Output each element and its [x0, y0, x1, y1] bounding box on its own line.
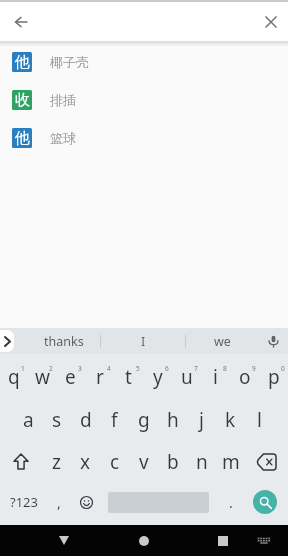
- staticText: 他: [15, 53, 30, 72]
- staticText: ?123: [10, 493, 38, 511]
- button[interactable]: z: [42, 440, 71, 483]
- staticText: 1: [21, 364, 25, 373]
- staticText: 7: [194, 364, 198, 373]
- staticText: k: [225, 407, 236, 433]
- staticText: 椰子壳: [50, 54, 89, 70]
- staticText: t: [125, 364, 132, 390]
- staticText: p: [268, 364, 280, 390]
- staticText: f: [111, 407, 118, 433]
- staticText: .: [229, 493, 233, 512]
- button[interactable]: Recents: [198, 525, 248, 556]
- staticText: 2: [49, 364, 53, 373]
- staticText: h: [167, 407, 179, 433]
- button[interactable]: v: [129, 440, 158, 483]
- staticText: m: [222, 449, 240, 475]
- button[interactable]: 他: [0, 119, 288, 157]
- button[interactable]: I: [103, 328, 183, 354]
- button[interactable]: c: [100, 440, 129, 483]
- button[interactable]: 5: [114, 354, 143, 397]
- staticText: 8: [223, 364, 227, 373]
- staticText: 篮球: [50, 130, 76, 146]
- staticText: I: [141, 333, 146, 350]
- button[interactable]: Back: [0, 2, 41, 41]
- button[interactable]: Backspace: [245, 440, 288, 483]
- button[interactable]: 6: [143, 354, 172, 397]
- staticText: j: [199, 407, 204, 433]
- button[interactable]: More suggestions: [0, 330, 14, 352]
- staticText: 他: [15, 129, 30, 148]
- button[interactable]: Back: [39, 525, 89, 556]
- staticText: l: [257, 407, 262, 433]
- staticText: o: [239, 364, 251, 390]
- button[interactable]: 2: [28, 354, 56, 397]
- button[interactable]: l: [245, 397, 274, 440]
- staticText: s: [52, 407, 62, 433]
- button[interactable]: s: [42, 397, 71, 440]
- button[interactable]: d: [71, 397, 100, 440]
- button[interactable]: 8: [201, 354, 230, 397]
- staticText: e: [65, 364, 76, 390]
- staticText: w: [35, 364, 50, 390]
- button[interactable]: h: [158, 397, 187, 440]
- button[interactable]: Switch keyboard: [248, 525, 279, 556]
- button[interactable]: 他: [0, 43, 288, 81]
- button[interactable]: g: [129, 397, 158, 440]
- staticText: c: [110, 449, 120, 475]
- button[interactable]: Search: [244, 483, 286, 525]
- button[interactable]: Home: [119, 525, 169, 556]
- button[interactable]: Space: [102, 483, 214, 525]
- button[interactable]: a: [14, 397, 42, 440]
- button[interactable]: we: [187, 328, 258, 354]
- staticText: y: [153, 364, 163, 390]
- button[interactable]: 3: [56, 354, 85, 397]
- button[interactable]: j: [187, 397, 216, 440]
- staticText: b: [167, 449, 179, 475]
- staticText: n: [196, 449, 208, 475]
- staticText: 4: [107, 364, 111, 373]
- staticText: 9: [252, 364, 256, 373]
- button[interactable]: Clear: [254, 2, 288, 41]
- staticText: z: [52, 449, 61, 475]
- staticText: r: [96, 364, 104, 390]
- button[interactable]: 7: [172, 354, 201, 397]
- staticText: u: [181, 364, 193, 390]
- button[interactable]: n: [187, 440, 216, 483]
- button[interactable]: ?123: [0, 483, 47, 525]
- staticText: we: [214, 333, 231, 350]
- staticText: a: [23, 407, 34, 433]
- staticText: thanks: [44, 333, 84, 350]
- staticText: v: [139, 449, 149, 475]
- staticText: d: [80, 407, 92, 433]
- button[interactable]: m: [216, 440, 245, 483]
- button[interactable]: ,: [47, 483, 70, 525]
- staticText: 0: [281, 364, 285, 373]
- button[interactable]: b: [158, 440, 187, 483]
- staticText: 收: [15, 91, 30, 110]
- button[interactable]: Emoji: [70, 483, 102, 525]
- button[interactable]: 收: [0, 81, 288, 119]
- staticText: i: [213, 364, 218, 390]
- button[interactable]: x: [71, 440, 100, 483]
- button[interactable]: 0: [259, 354, 288, 397]
- button[interactable]: k: [216, 397, 245, 440]
- staticText: 3: [78, 364, 82, 373]
- staticText: q: [8, 364, 20, 390]
- button[interactable]: .: [218, 483, 244, 525]
- button[interactable]: Shift: [0, 440, 42, 483]
- button[interactable]: Voice input: [259, 328, 288, 354]
- staticText: g: [138, 407, 150, 433]
- button[interactable]: f: [100, 397, 129, 440]
- staticText: 5: [136, 364, 140, 373]
- staticText: 排插: [50, 92, 76, 108]
- staticText: ,: [57, 493, 61, 512]
- button[interactable]: 1: [0, 354, 28, 397]
- button[interactable]: 9: [230, 354, 259, 397]
- staticText: 6: [165, 364, 169, 373]
- staticText: x: [80, 449, 91, 475]
- button[interactable]: 4: [85, 354, 114, 397]
- button[interactable]: thanks: [24, 328, 104, 354]
